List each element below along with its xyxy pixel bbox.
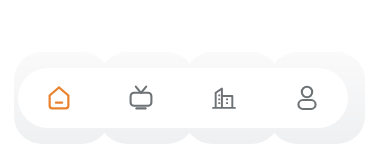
button[interactable]: Live TV [100, 68, 182, 128]
button[interactable]: Profile [265, 68, 348, 128]
button[interactable]: Business [182, 68, 265, 128]
button[interactable]: Home [18, 68, 100, 128]
